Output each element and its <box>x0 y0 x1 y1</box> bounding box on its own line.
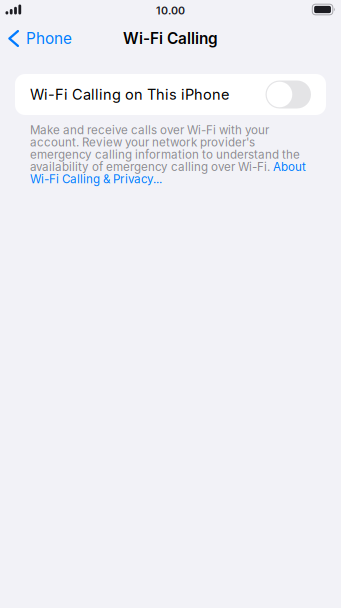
button[interactable]: Phone <box>0 23 80 54</box>
button[interactable]: Wi-Fi Calling on This iPhone <box>15 74 326 115</box>
staticText: Wi-Fi Calling <box>123 29 218 48</box>
staticText: 10.00 <box>156 4 185 17</box>
staticText: Wi-Fi Calling on This iPhone <box>30 86 229 103</box>
staticText: Phone <box>26 29 72 48</box>
staticText: Make and receive calls over Wi-Fi with y… <box>30 124 306 185</box>
